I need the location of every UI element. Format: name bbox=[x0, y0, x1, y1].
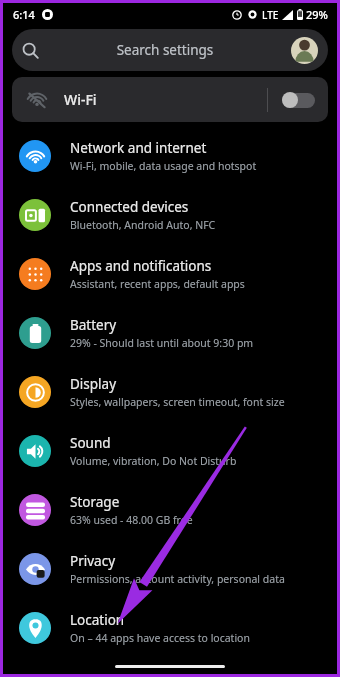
staticText: Storage bbox=[70, 493, 120, 511]
button[interactable]: Privacy bbox=[3, 549, 337, 589]
staticText: Location bbox=[70, 611, 125, 629]
staticText: Assistant, recent apps, default apps bbox=[70, 277, 245, 291]
staticText: Network and internet bbox=[70, 139, 207, 157]
staticText: LTE bbox=[262, 8, 279, 22]
staticText: 29% - Should last until about 9:30 pm bbox=[70, 336, 254, 350]
staticText: Permissions, account activity, personal … bbox=[70, 572, 285, 586]
staticText: Wi-Fi bbox=[64, 90, 267, 109]
staticText: Bluetooth, Android Auto, NFC bbox=[70, 218, 216, 232]
staticText: Styles, wallpapers, screen timeout, font… bbox=[70, 395, 285, 409]
button[interactable]: Battery bbox=[3, 313, 337, 353]
button[interactable]: Wi-Fi toggle bbox=[282, 92, 315, 108]
staticText: Volume, vibration, Do Not Disturb bbox=[70, 454, 237, 468]
button[interactable]: Apps and notifications bbox=[3, 254, 337, 294]
button[interactable]: Account bbox=[291, 37, 318, 64]
staticText: Sound bbox=[70, 434, 111, 452]
staticText: 63% used - 48.00 GB free bbox=[70, 513, 193, 527]
button[interactable]: Sound bbox=[3, 431, 337, 471]
staticText: Wi-Fi, mobile, data usage and hotspot bbox=[70, 159, 257, 173]
button[interactable]: Search settings bbox=[12, 29, 328, 71]
staticText: On – 44 apps have access to location bbox=[70, 631, 250, 645]
button[interactable]: Connected devices bbox=[3, 195, 337, 235]
button[interactable]: Location bbox=[3, 608, 337, 648]
staticText: 29% bbox=[306, 7, 328, 22]
staticText: Display bbox=[70, 375, 117, 393]
staticText: Battery bbox=[70, 316, 117, 334]
staticText: Apps and notifications bbox=[70, 257, 212, 275]
staticText: Connected devices bbox=[70, 198, 189, 216]
button[interactable]: Wi-Fi bbox=[12, 77, 328, 122]
button[interactable]: Network and internet bbox=[3, 136, 337, 176]
staticText: Privacy bbox=[70, 552, 116, 570]
button[interactable]: Display bbox=[3, 372, 337, 412]
staticText: 6:14 bbox=[13, 7, 35, 22]
staticText: Search settings bbox=[39, 41, 291, 59]
button[interactable]: Storage bbox=[3, 490, 337, 530]
